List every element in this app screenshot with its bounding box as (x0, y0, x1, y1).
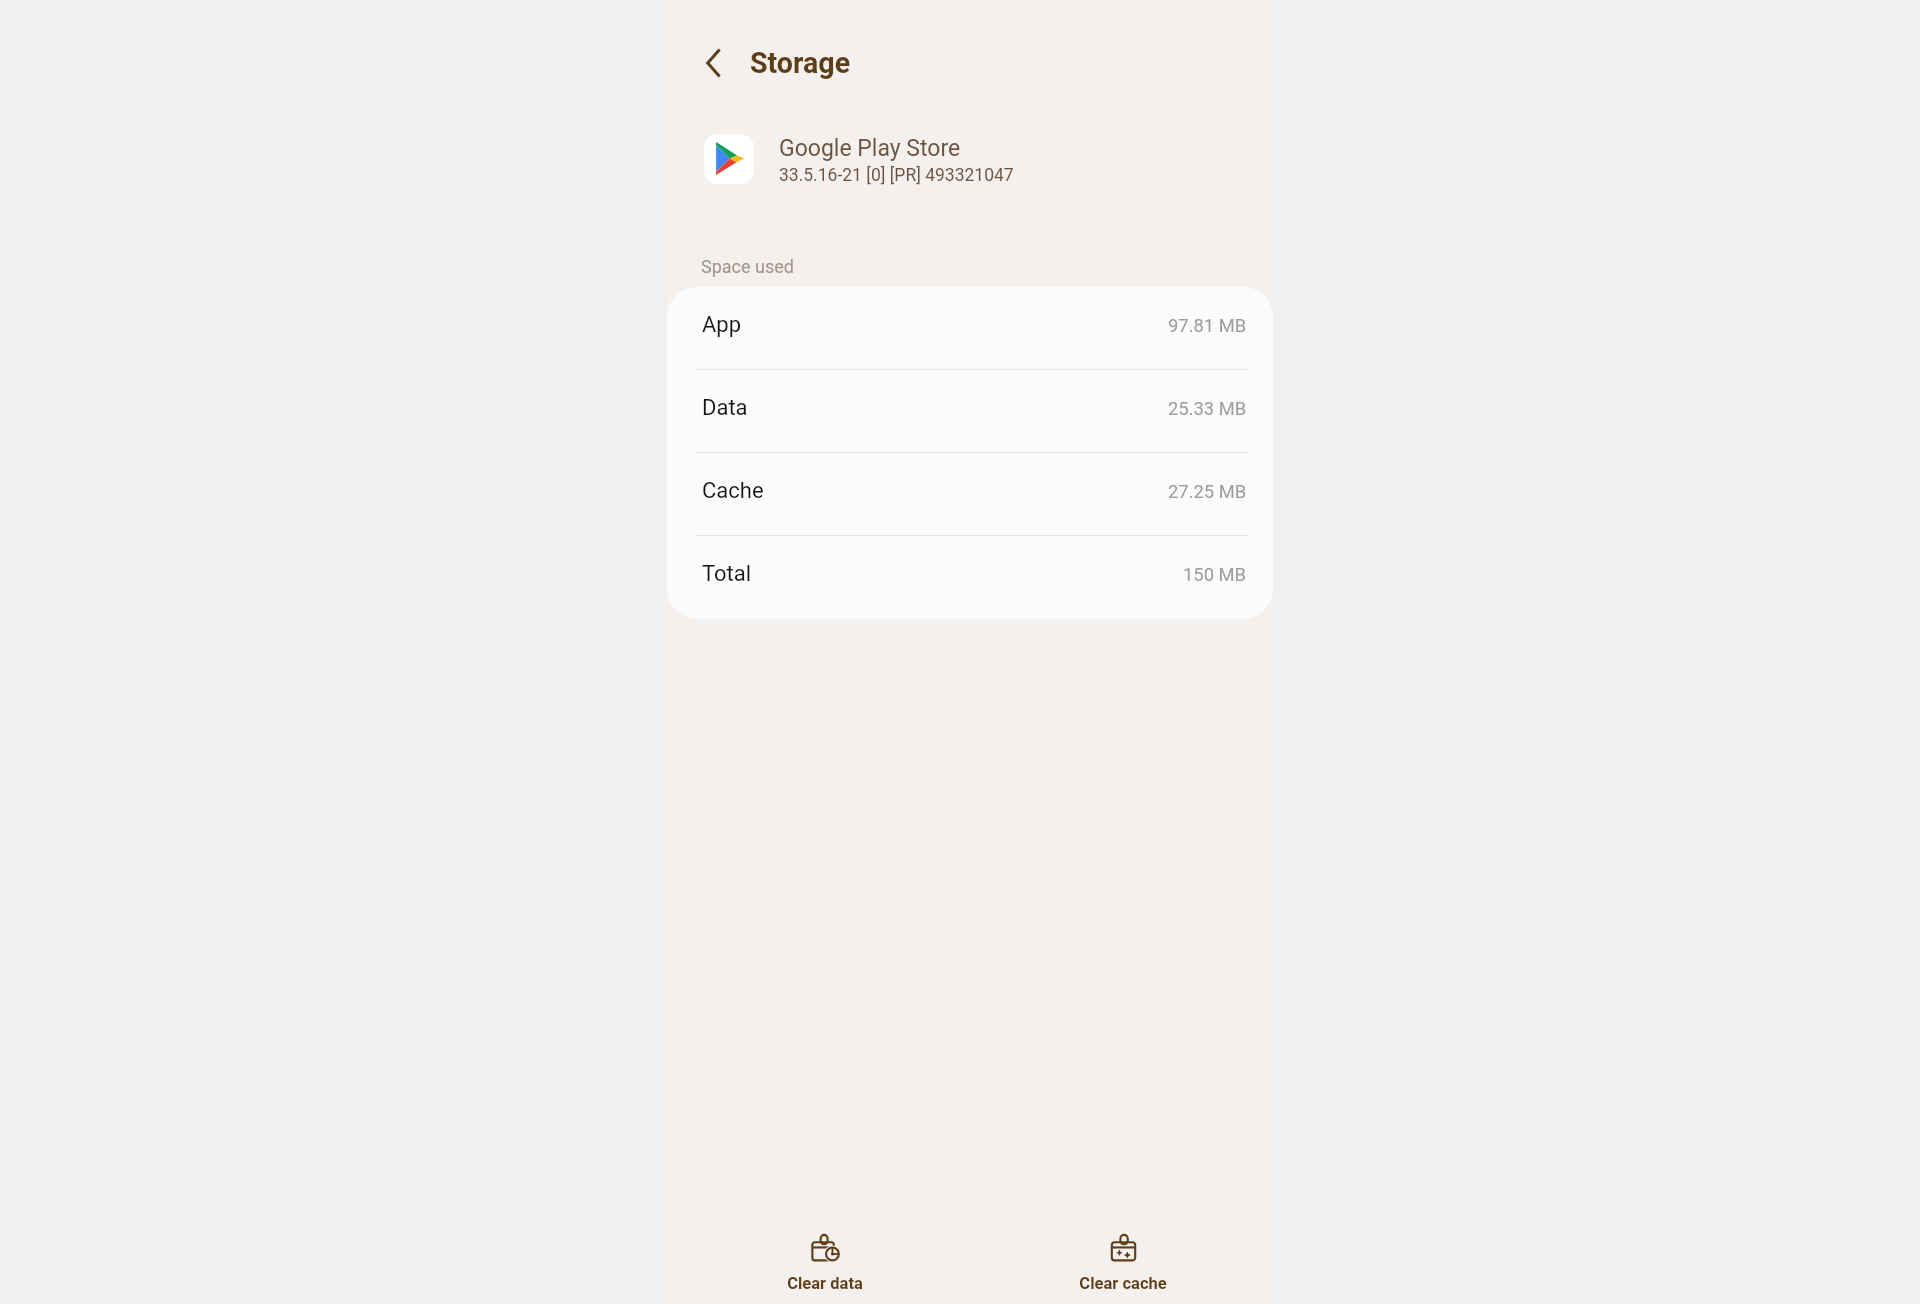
button[interactable]: Data (667, 370, 1273, 453)
button[interactable]: Clear data (725, 1230, 925, 1297)
staticText: Data (702, 395, 748, 421)
staticText: Storage (750, 46, 851, 80)
button[interactable]: Total (667, 536, 1273, 619)
staticText: Clear data (787, 1274, 863, 1293)
staticText: Google Play Store (779, 135, 961, 162)
button[interactable]: Cache (667, 453, 1273, 536)
staticText: Space used (701, 256, 794, 277)
button[interactable]: Navigate up (688, 37, 740, 89)
staticText: 97.81 MB (1168, 315, 1247, 337)
staticText: Total (702, 561, 752, 587)
staticText: 27.25 MB (1168, 481, 1247, 503)
staticText: 25.33 MB (1168, 398, 1247, 420)
button[interactable]: App (667, 287, 1273, 370)
staticText: 33.5.16-21 [0] [PR] 493321047 (779, 165, 1014, 186)
staticText: Cache (702, 478, 764, 504)
staticText: Clear cache (1079, 1274, 1167, 1293)
staticText: 150 MB (1183, 564, 1247, 586)
staticText: App (702, 312, 742, 338)
button[interactable]: Clear cache (1023, 1230, 1223, 1297)
